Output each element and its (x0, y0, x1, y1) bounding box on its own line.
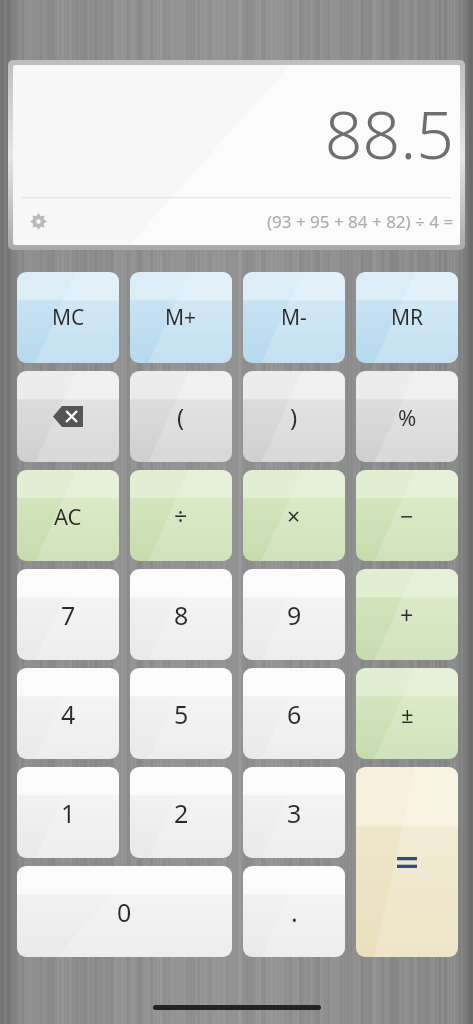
button[interactable]: MC (17, 272, 119, 363)
staticText: ± (401, 699, 414, 729)
button[interactable]: ( (130, 371, 232, 462)
staticText: 8 (174, 598, 189, 632)
staticText: + (400, 599, 414, 630)
button[interactable]: 9 (243, 569, 345, 660)
staticText: 2 (174, 796, 189, 830)
staticText: MC (52, 303, 85, 332)
button[interactable]: ± (356, 668, 458, 759)
staticText: ( (177, 400, 185, 433)
button[interactable]: % (356, 371, 458, 462)
staticText: ) (290, 400, 298, 433)
staticText: . (291, 895, 298, 929)
staticText: 0 (117, 895, 132, 929)
button[interactable]: ÷ (130, 470, 232, 561)
button[interactable]: . (243, 866, 345, 957)
button[interactable]: Equals (356, 767, 458, 957)
staticText: 6 (287, 697, 302, 731)
staticText: MR (391, 303, 424, 332)
button[interactable]: 0 (17, 866, 232, 957)
button[interactable]: Settings (25, 208, 51, 234)
staticText: M- (281, 303, 307, 332)
staticText: AC (54, 501, 82, 531)
staticText: M+ (165, 303, 197, 332)
button[interactable]: 2 (130, 767, 232, 858)
staticText: ÷ (174, 500, 188, 531)
button[interactable]: 8 (130, 569, 232, 660)
button[interactable]: 7 (17, 569, 119, 660)
staticText: 88.5 (324, 88, 454, 178)
button[interactable]: + (356, 569, 458, 660)
button[interactable]: M+ (130, 272, 232, 363)
staticText: 4 (61, 697, 76, 731)
button[interactable]: 6 (243, 668, 345, 759)
button[interactable]: 5 (130, 668, 232, 759)
staticText: 1 (61, 796, 76, 830)
staticText: − (400, 500, 414, 531)
button[interactable]: 3 (243, 767, 345, 858)
staticText: × (287, 500, 301, 531)
button[interactable]: AC (17, 470, 119, 561)
button[interactable]: M- (243, 272, 345, 363)
staticText: % (398, 402, 417, 432)
button[interactable]: − (356, 470, 458, 561)
button[interactable]: 4 (17, 668, 119, 759)
staticText: 3 (287, 796, 302, 830)
button[interactable]: 1 (17, 767, 119, 858)
button[interactable]: ) (243, 371, 345, 462)
button[interactable]: Backspace (17, 371, 119, 462)
button[interactable]: × (243, 470, 345, 561)
staticText: 5 (174, 697, 189, 731)
staticText: 9 (287, 598, 302, 632)
button[interactable]: MR (356, 272, 458, 363)
staticText: 7 (61, 598, 76, 632)
staticText: (93 + 95 + 84 + 82) ÷ 4 = (267, 210, 454, 233)
